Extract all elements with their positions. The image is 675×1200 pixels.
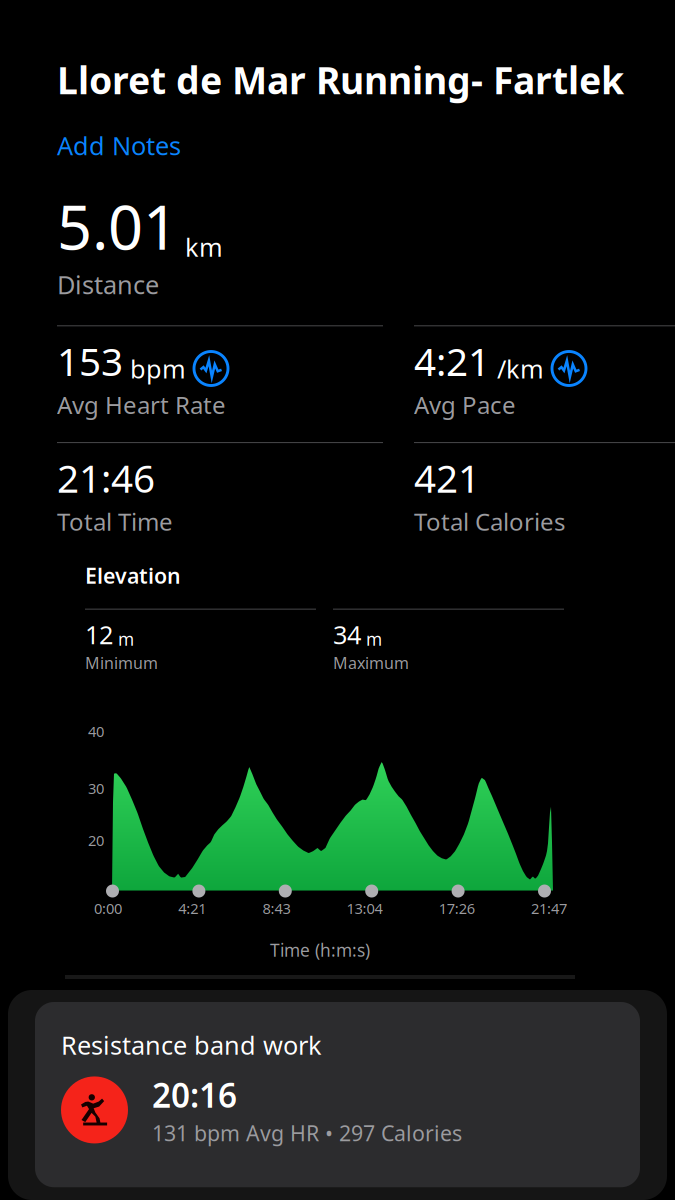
staticText: 13:04 [347, 898, 383, 918]
staticText: Maximum [333, 652, 409, 673]
staticText: m [361, 627, 382, 650]
staticText: 421 [414, 452, 480, 503]
staticText: Minimum [85, 652, 158, 673]
staticText: 4:21 [178, 898, 206, 918]
staticText: 12 [85, 618, 113, 651]
button[interactable]: Add Notes [0, 105, 675, 168]
staticText: 17:26 [439, 898, 475, 918]
staticText: /km [490, 352, 544, 385]
button[interactable]: Resistance band work [35, 1002, 640, 1187]
staticText: 20:16 [152, 1073, 237, 1117]
staticText: 8:43 [262, 898, 290, 918]
staticText: Avg Heart Rate [57, 389, 226, 421]
staticText: 5.01 [57, 185, 178, 267]
staticText: Total Calories [414, 505, 565, 537]
staticText: Total Time [57, 505, 173, 537]
staticText: 34 [333, 618, 361, 651]
staticText: 40 [88, 721, 104, 741]
staticText: 30 [88, 778, 104, 798]
staticText: Lloret de Mar Running- Fartlek [57, 55, 624, 105]
staticText: 0:00 [94, 898, 122, 918]
staticText: 131 bpm Avg HR • 297 Calories [152, 1119, 462, 1147]
staticText: 4:21 [414, 335, 490, 387]
staticText: km [178, 230, 223, 264]
staticText: 20 [88, 830, 104, 850]
staticText: Elevation [85, 561, 181, 590]
staticText: Avg Pace [414, 389, 516, 421]
staticText: Time (h:m:s) [270, 938, 370, 961]
staticText: Add Notes [57, 129, 181, 162]
staticText: Distance [57, 268, 159, 301]
staticText: m [113, 627, 134, 650]
staticText: bpm [123, 352, 186, 385]
staticText: Resistance band work [61, 1028, 322, 1062]
staticText: 21:47 [531, 898, 567, 918]
staticText: 21:46 [57, 452, 155, 503]
staticText: 153 [57, 335, 123, 387]
